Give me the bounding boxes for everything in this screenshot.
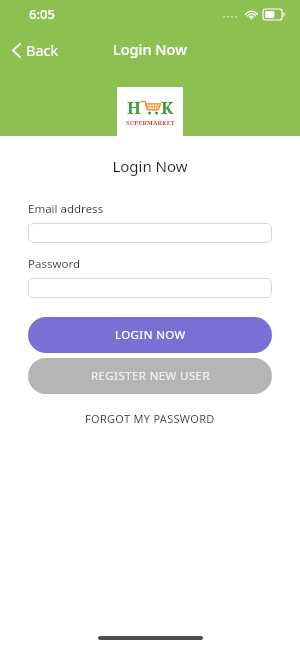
staticText: H [127,96,141,119]
staticText: Login Now [113,39,187,59]
staticText: SUPERMARKET [126,119,175,127]
button[interactable]: FORGOT MY PASSWORD [28,411,272,426]
button[interactable]: LOGIN NOW [28,317,272,353]
staticText: REGISTER NEW USER [91,368,210,384]
staticText: Login Now [0,156,300,176]
staticText: K [161,96,174,119]
button[interactable]: Email address [28,223,272,243]
staticText: FORGOT MY PASSWORD [85,411,215,426]
staticText: Back [26,40,59,60]
staticText: 6:05 [29,5,55,23]
button[interactable]: REGISTER NEW USER [28,358,272,394]
button[interactable]: Password [28,278,272,298]
button[interactable]: Back [8,36,63,64]
staticText: LOGIN NOW [115,327,186,343]
staticText: Email address [28,201,104,217]
staticText: Password [28,256,81,272]
